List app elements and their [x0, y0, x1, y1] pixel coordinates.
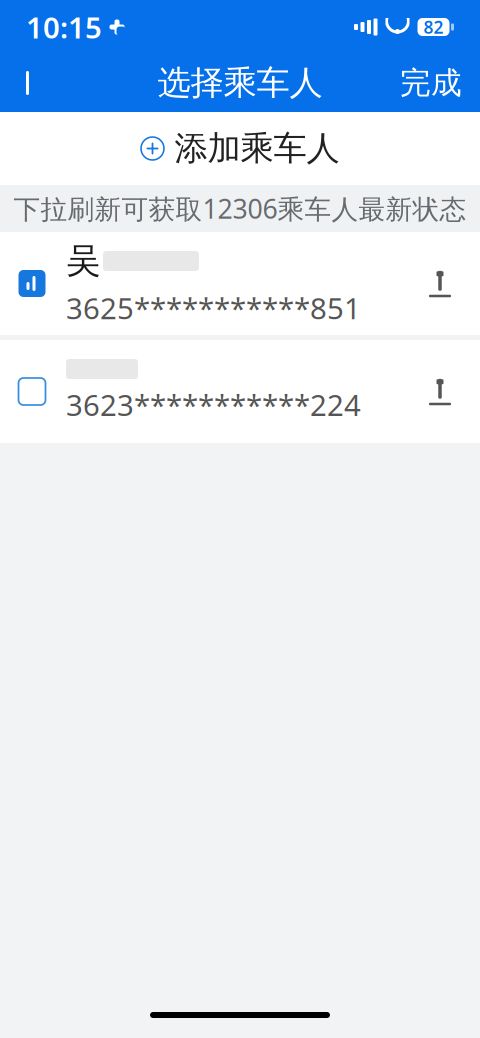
staticText: 吴 — [66, 240, 101, 282]
staticText: 3625***********851 — [66, 288, 361, 327]
staticText: 10:15 — [26, 7, 102, 46]
staticText: 完成 — [400, 64, 462, 102]
button[interactable]: 吴 — [0, 232, 480, 335]
staticText: 82 — [423, 15, 443, 38]
staticText: 添加乘车人 — [174, 128, 339, 169]
button[interactable]: 添加乘车人 — [0, 112, 480, 185]
button[interactable]: 完成 — [382, 54, 480, 112]
button[interactable]: 3623***********224 — [0, 340, 480, 443]
button[interactable]: 返回 — [0, 54, 60, 112]
staticText: 选择乘车人 — [157, 62, 322, 103]
staticText: 下拉刷新可获取12306乘车人最新状态 — [13, 191, 466, 226]
staticText: 3623***********224 — [66, 385, 361, 424]
